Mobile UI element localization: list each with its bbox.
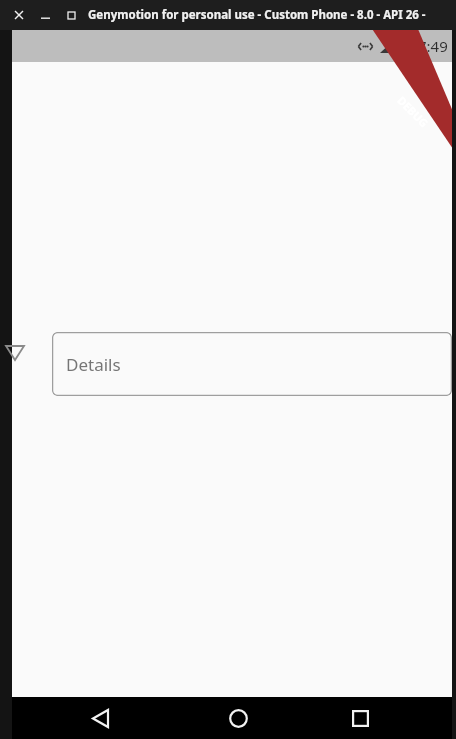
button[interactable]: Home: [216, 697, 260, 739]
button[interactable]: Collapse: [2, 340, 28, 366]
button[interactable]: Maximize: [62, 6, 80, 24]
staticText: DEBUG: [394, 93, 432, 130]
button[interactable]: Recent apps: [338, 697, 382, 739]
button[interactable]: Details: [52, 332, 452, 396]
button[interactable]: Close: [10, 6, 28, 24]
staticText: 7:49: [418, 36, 448, 56]
staticText: Genymotion for personal use - Custom Pho…: [88, 7, 456, 23]
button[interactable]: Back: [78, 697, 122, 739]
staticText: Details: [66, 353, 121, 376]
button[interactable]: Minimize: [36, 6, 54, 24]
